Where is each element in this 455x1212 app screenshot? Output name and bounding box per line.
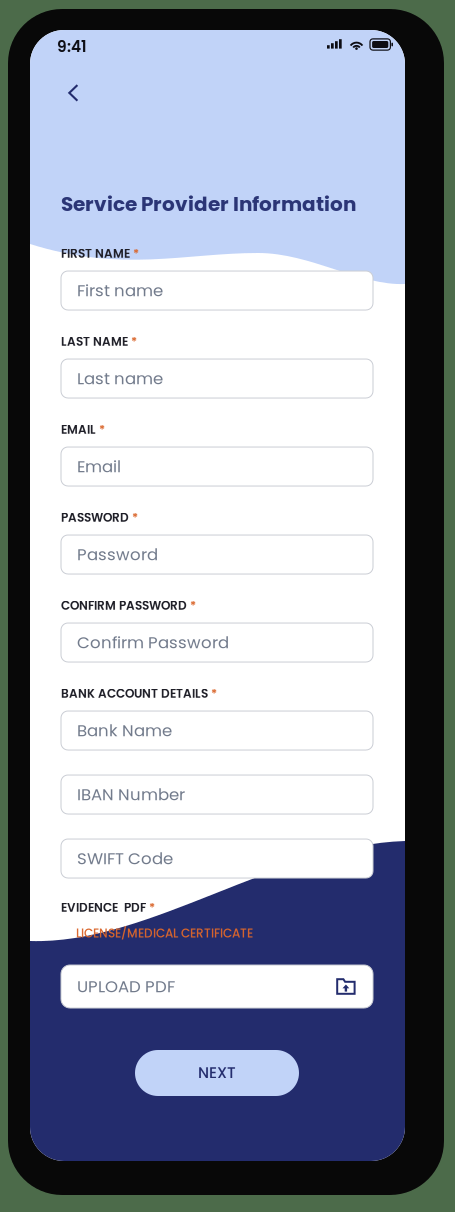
staticText: Password	[77, 543, 158, 566]
staticText: SWIFT Code	[77, 847, 173, 870]
staticText: LICENSE/MEDICAL CERTIFICATE	[76, 925, 253, 942]
staticText: IBAN Number	[77, 783, 185, 806]
staticText: *	[131, 333, 137, 350]
staticText: *	[149, 899, 155, 916]
staticText: NEXT	[198, 1062, 236, 1084]
staticText: CONFIRM PASSWORD	[61, 597, 187, 614]
staticText: Bank Name	[77, 719, 172, 742]
staticText: *	[211, 685, 217, 702]
staticText: *	[99, 421, 105, 438]
staticText: UPLOAD PDF	[77, 975, 175, 998]
staticText: First name	[77, 279, 163, 302]
staticText: BANK ACCOUNT DETAILS	[61, 685, 208, 702]
button[interactable]: Back	[58, 73, 112, 113]
staticText: EMAIL	[61, 421, 96, 438]
staticText: Service Provider Information	[61, 190, 356, 218]
staticText: FIRST NAME	[61, 245, 130, 262]
staticText: *	[132, 509, 138, 526]
staticText: 9:41	[57, 36, 87, 57]
button[interactable]: NEXT	[135, 1050, 299, 1096]
staticText: Email	[77, 455, 121, 478]
staticText: *	[133, 245, 139, 262]
staticText: Confirm Password	[77, 631, 229, 654]
button[interactable]: UPLOAD PDF	[61, 965, 373, 1008]
staticText: Last name	[77, 367, 163, 390]
staticText: EVIDENCE PDF	[61, 899, 146, 916]
staticText: PASSWORD	[61, 509, 129, 526]
staticText: LAST NAME	[61, 333, 128, 350]
staticText: *	[190, 597, 196, 614]
